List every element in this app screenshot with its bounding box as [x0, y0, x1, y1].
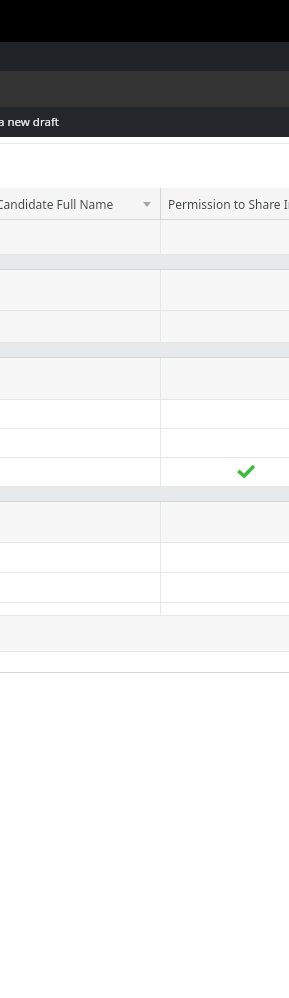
button[interactable]: Permission to Share Info [161, 188, 289, 219]
button[interactable]: Permission granted [0, 458, 289, 486]
staticText: Permission to Share Info [168, 196, 289, 212]
button[interactable]: Candidate Full Name [0, 188, 160, 219]
staticText: a new draft [0, 114, 59, 130]
button[interactable]: a new draft [0, 107, 289, 137]
other: Sort column [139, 196, 155, 212]
other: Permission granted [239, 466, 253, 478]
staticText: Candidate Full Name [0, 196, 114, 212]
